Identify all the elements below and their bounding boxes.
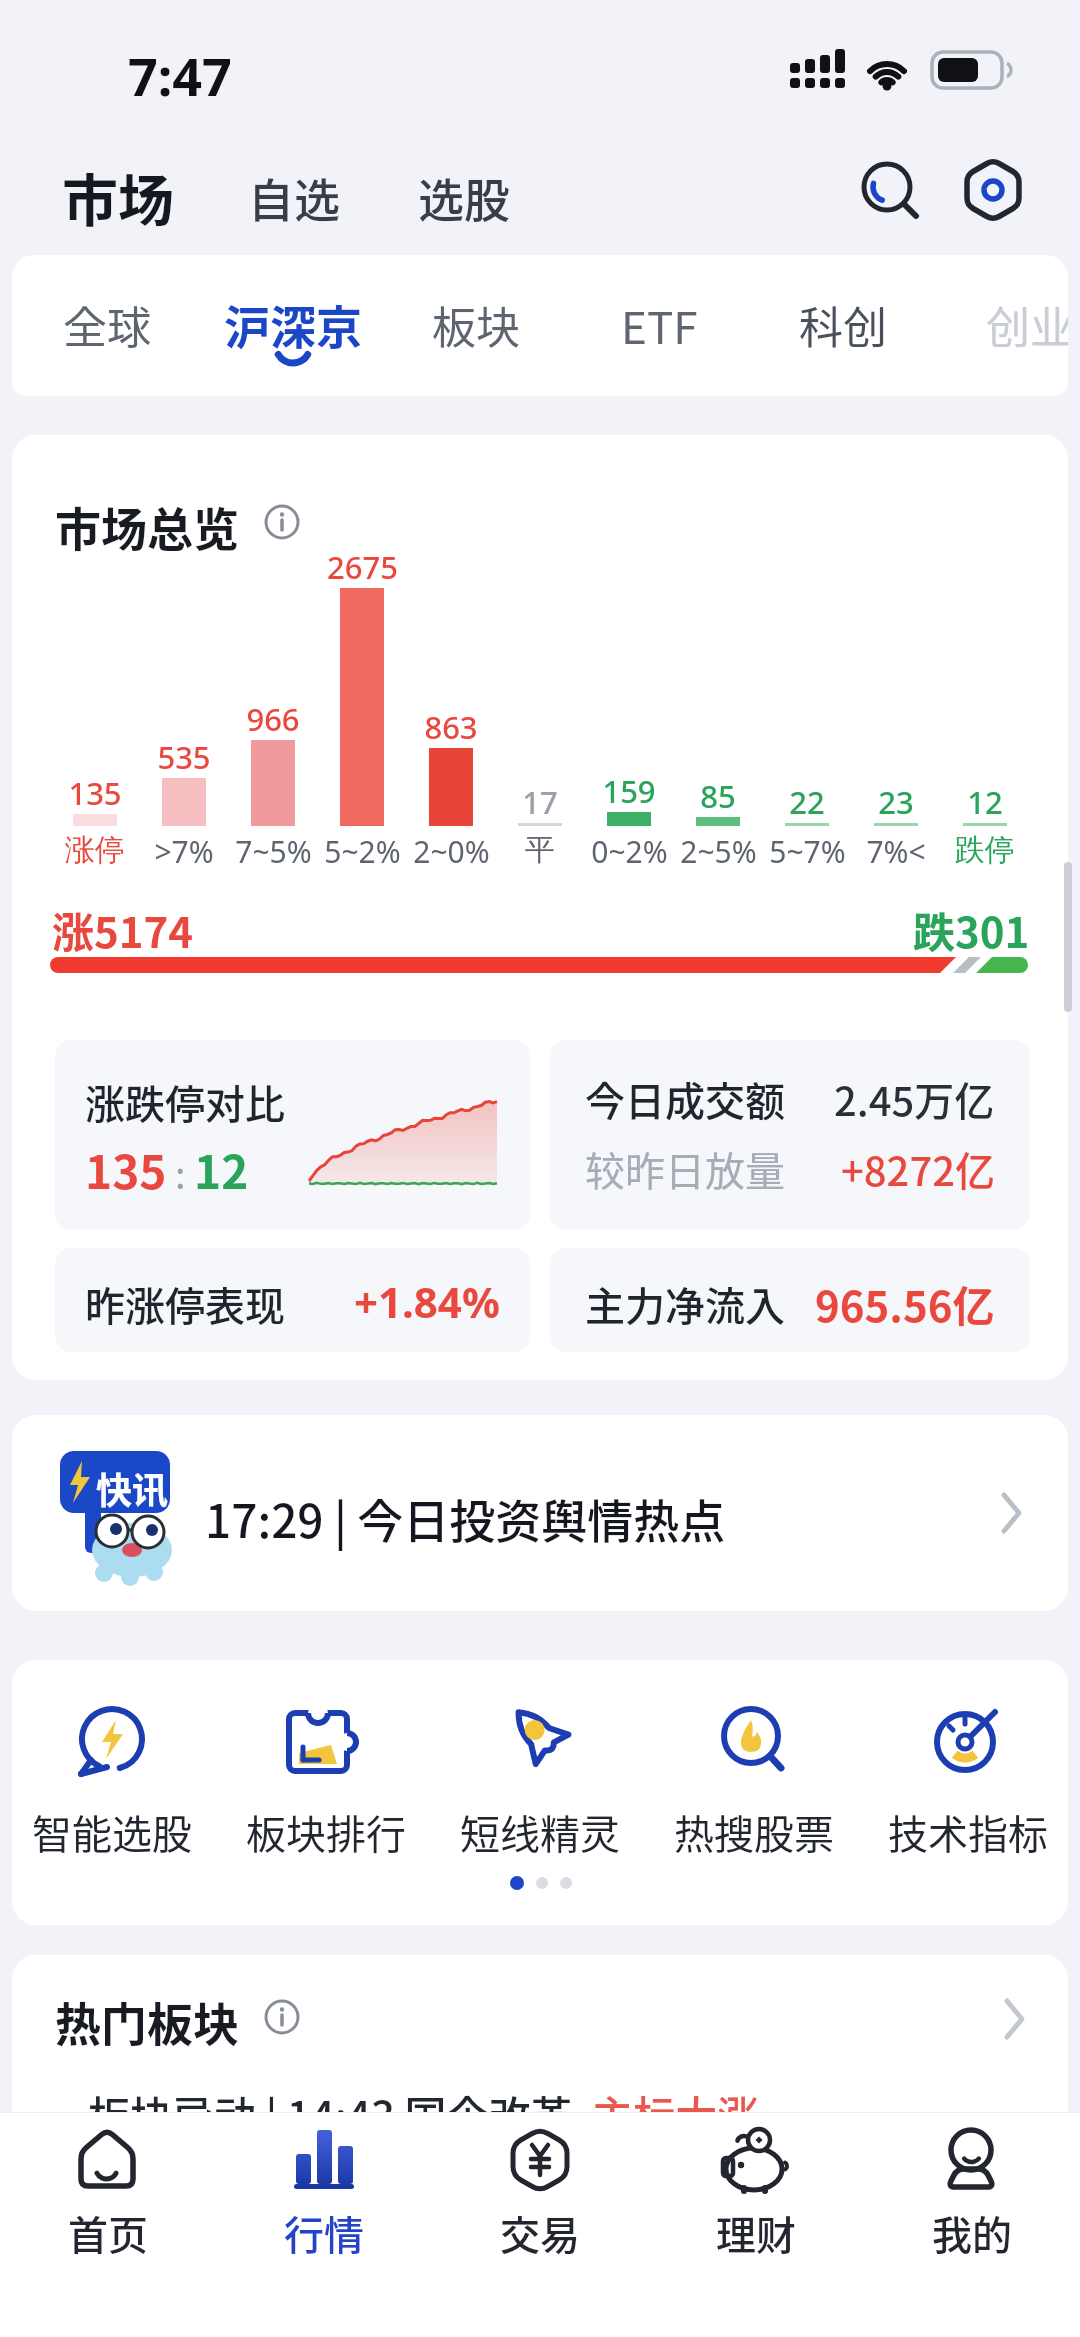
staticText: 板块排行	[246, 1803, 406, 1861]
staticText: 理财	[716, 2204, 796, 2262]
button[interactable]: 板块排行	[236, 1688, 416, 1878]
staticText: 首页	[68, 2204, 148, 2262]
staticText: 17:29 | 今日投资舆情热点	[205, 1485, 726, 1552]
staticText: 23	[878, 781, 914, 823]
staticText: 跌停	[955, 831, 1015, 869]
staticText: 7~5%	[235, 831, 312, 872]
button[interactable]: 理财	[676, 2118, 836, 2278]
button[interactable]	[960, 156, 1030, 226]
staticText: 22	[789, 781, 825, 823]
staticText: 12	[967, 781, 1003, 823]
staticText: 966	[246, 698, 300, 740]
staticText: 7:47	[128, 40, 232, 111]
button[interactable]: 交易	[460, 2118, 620, 2278]
button[interactable]: 板块	[396, 275, 556, 375]
button[interactable]: 昨涨停表现	[55, 1248, 530, 1352]
staticText: 跌301	[913, 899, 1030, 960]
staticText: 较昨日放量	[585, 1140, 785, 1198]
button[interactable]: 今日成交额	[550, 1040, 1030, 1230]
button[interactable]: 科创	[763, 275, 923, 375]
button[interactable]: 快讯	[12, 1415, 1068, 1611]
button[interactable]: 热搜股票	[664, 1688, 844, 1878]
staticText: 0~2%	[591, 831, 668, 872]
staticText: 市场	[62, 156, 174, 237]
staticText: 涨5174	[52, 899, 194, 960]
staticText: 快讯	[96, 1462, 169, 1514]
staticText: 2~0%	[413, 831, 490, 872]
staticText: 科创	[799, 293, 887, 357]
staticText: 板块	[432, 293, 520, 357]
staticText: 选股	[418, 164, 510, 228]
button[interactable]: 创业	[950, 275, 1068, 375]
button[interactable]: 沪深京	[213, 275, 373, 375]
button[interactable]: 智能选股	[22, 1688, 202, 1878]
button[interactable]: 行情	[244, 2118, 404, 2278]
staticText: 5~2%	[324, 831, 401, 872]
staticText: >7%	[154, 831, 214, 872]
button[interactable]: 短线精灵	[450, 1688, 630, 1878]
staticText: 2675	[327, 546, 398, 588]
button[interactable]: ETF	[579, 275, 739, 375]
staticText: 535	[157, 736, 211, 778]
button[interactable]	[972, 1985, 1052, 2055]
staticText: 自选	[248, 164, 340, 228]
button[interactable]: 我的	[892, 2118, 1052, 2278]
staticText: 行情	[284, 2204, 364, 2262]
staticText: 技术指标	[888, 1803, 1048, 1861]
staticText: 创业	[986, 293, 1068, 357]
staticText: 863	[424, 706, 478, 748]
button[interactable]: 全球	[27, 275, 187, 375]
staticText: 2~5%	[680, 831, 757, 872]
button[interactable]: 主力净流入	[550, 1248, 1030, 1352]
staticText: 板块异动 | 14:43 国企改革 主标大涨	[88, 2083, 760, 2144]
staticText: 平	[525, 831, 555, 869]
staticText: 7%<	[866, 831, 926, 872]
staticText: 短线精灵	[460, 1803, 620, 1861]
staticText: 涨跌停对比	[85, 1073, 285, 1131]
staticText: 159	[602, 770, 656, 812]
staticText: 市场总览	[55, 493, 239, 560]
staticText: ETF	[621, 293, 698, 357]
button[interactable]: 涨跌停对比	[55, 1040, 530, 1230]
staticText: 热搜股票	[674, 1803, 834, 1861]
staticText: 交易	[500, 2204, 580, 2262]
staticText: +1.84%	[354, 1273, 500, 1330]
staticText: 85	[700, 775, 736, 817]
staticText: +8272亿	[841, 1140, 995, 1198]
staticText: 今日成交额	[585, 1070, 785, 1128]
staticText: 昨涨停表现	[85, 1275, 285, 1333]
button[interactable]: 选股	[410, 160, 520, 224]
staticText: 135	[68, 772, 122, 814]
staticText: 135 : 12	[85, 1136, 249, 1203]
staticText: 17	[522, 781, 558, 823]
staticText: 主力净流入	[585, 1275, 785, 1333]
staticText: 智能选股	[32, 1803, 192, 1861]
button[interactable]: 自选	[240, 160, 350, 224]
staticText: 我的	[932, 2204, 1012, 2262]
staticText: 涨停	[65, 831, 125, 869]
staticText: 全球	[63, 293, 151, 357]
staticText: 沪深京	[224, 291, 362, 358]
button[interactable]: 技术指标	[878, 1688, 1058, 1878]
button[interactable]	[856, 156, 926, 226]
staticText: 热门板块	[55, 1988, 239, 2055]
button[interactable]: 首页	[28, 2118, 188, 2278]
staticText: 965.56亿	[815, 1273, 995, 1334]
staticText: 2.45万亿	[834, 1070, 995, 1128]
staticText: 5~7%	[769, 831, 846, 872]
